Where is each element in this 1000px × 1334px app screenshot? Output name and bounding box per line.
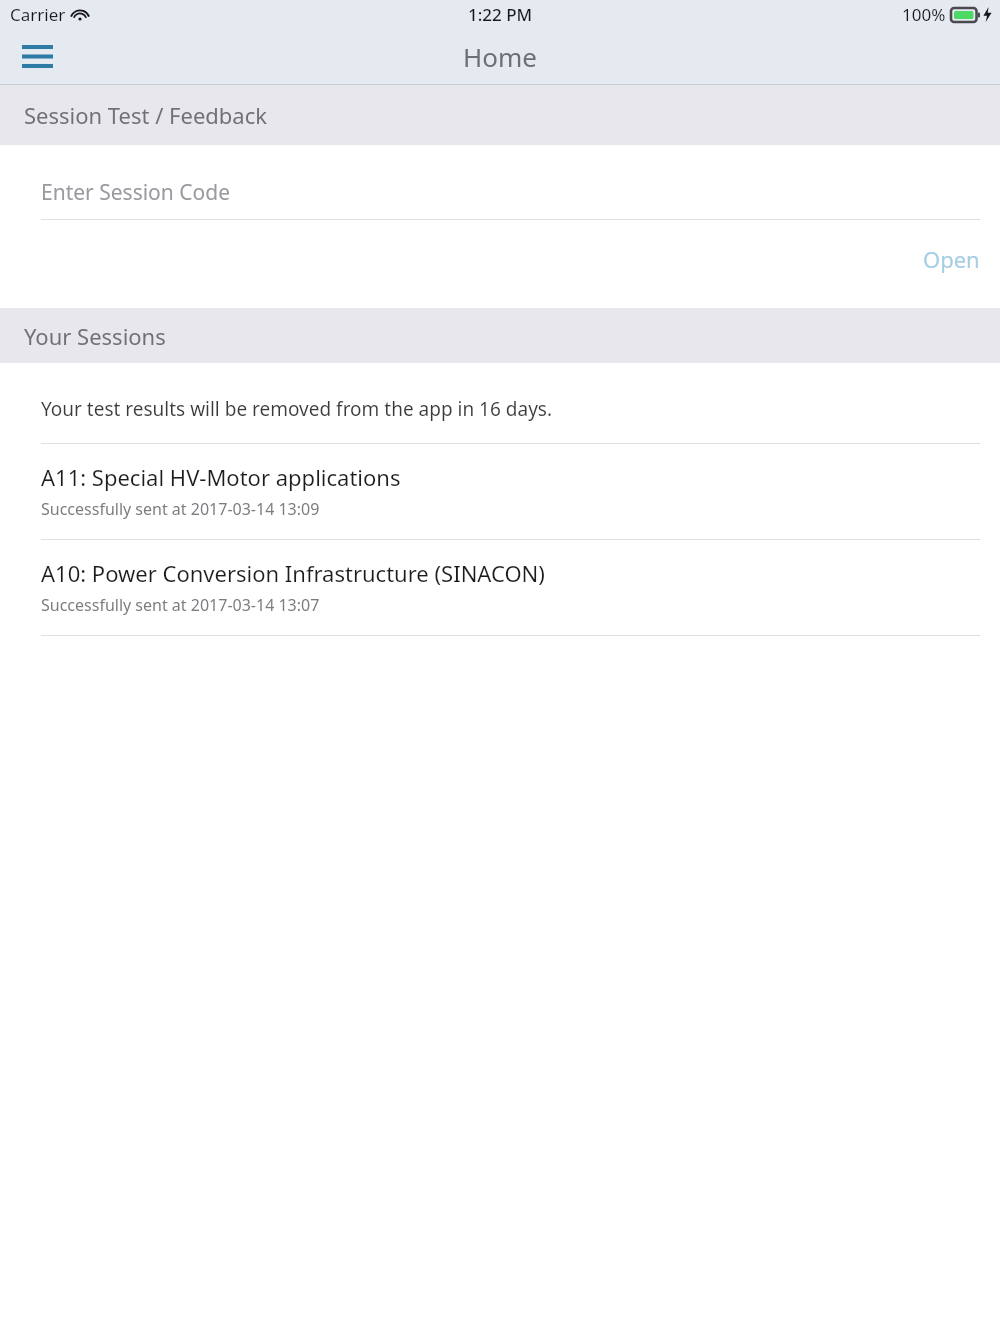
button[interactable]: A11: Special HV-Motor applications	[0, 444, 1000, 539]
button[interactable]: A10: Power Conversion Infrastructure (SI…	[0, 540, 1000, 635]
staticText: Enter Session Code	[41, 178, 230, 207]
staticText: Your test results will be removed from t…	[41, 396, 553, 422]
staticText: Home	[463, 39, 537, 74]
staticText: Successfully sent at 2017-03-14 13:09	[41, 498, 320, 520]
staticText: Carrier	[10, 3, 66, 26]
staticText: Session Test / Feedback	[24, 100, 268, 130]
button[interactable]: Open	[860, 233, 980, 285]
staticText: A11: Special HV-Motor applications	[41, 462, 401, 492]
staticText: Open	[923, 244, 980, 274]
button[interactable]: Menu	[8, 30, 66, 82]
staticText: Your Sessions	[24, 321, 166, 351]
staticText: A10: Power Conversion Infrastructure (SI…	[41, 558, 545, 588]
staticText: 100%	[902, 3, 946, 26]
staticText: Successfully sent at 2017-03-14 13:07	[41, 594, 320, 616]
staticText: 1:22 PM	[468, 3, 533, 26]
